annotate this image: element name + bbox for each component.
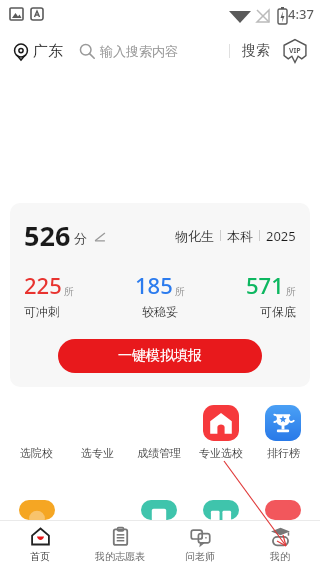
staticText: 专业选校: [199, 446, 243, 460]
button[interactable]: VIP: [282, 38, 308, 64]
button[interactable]: 首页: [0, 521, 80, 568]
staticText: 较稳妥: [142, 304, 178, 319]
staticText: 526: [24, 217, 71, 254]
button[interactable]: 选院校: [6, 405, 67, 460]
staticText: 搜索: [242, 42, 270, 60]
staticText: 排行榜: [267, 446, 300, 460]
staticText: 可冲刺: [24, 304, 60, 319]
staticText: 一键模拟填报: [118, 347, 202, 365]
staticText: 所: [175, 285, 185, 298]
staticText: 所: [64, 285, 74, 298]
staticText: 225: [24, 270, 62, 300]
staticText: 本科: [227, 228, 253, 244]
button[interactable]: 526: [10, 203, 310, 387]
staticText: 所: [286, 285, 296, 298]
staticText: VIP: [289, 46, 301, 56]
staticText: 185: [135, 270, 173, 300]
button[interactable]: 搜索: [230, 42, 282, 60]
button[interactable]: 225: [24, 270, 114, 319]
staticText: 2025: [266, 227, 296, 245]
button[interactable]: 一键模拟填报: [58, 339, 262, 373]
staticText: 分: [74, 230, 87, 246]
staticText: 广东: [33, 42, 63, 61]
button[interactable]: 选专业: [67, 405, 128, 460]
staticText: 选院校: [20, 446, 53, 460]
staticText: 我的志愿表: [95, 550, 145, 563]
staticText: 选专业: [81, 446, 114, 460]
button[interactable]: 571: [205, 270, 296, 319]
staticText: 我的: [270, 550, 290, 563]
button[interactable]: 成绩管理: [128, 405, 190, 460]
button[interactable]: 我的志愿表: [80, 521, 160, 568]
button[interactable]: 广东: [12, 42, 67, 61]
button[interactable]: 专业选校: [190, 405, 252, 460]
staticText: 输入搜索内容: [100, 43, 178, 59]
button[interactable]: 问老师: [160, 521, 240, 568]
button[interactable]: 185: [114, 270, 205, 319]
staticText: 571: [246, 270, 284, 300]
staticText: 成绩管理: [137, 446, 181, 460]
button[interactable]: 我的: [240, 521, 320, 568]
staticText: 可保底: [260, 304, 296, 319]
button[interactable]: 排行榜: [252, 405, 314, 460]
staticText: 4:37: [288, 5, 314, 23]
staticText: 物化生: [175, 228, 214, 244]
button[interactable]: 输入搜索内容: [79, 43, 229, 59]
staticText: 首页: [30, 550, 50, 563]
staticText: 问老师: [185, 550, 215, 563]
